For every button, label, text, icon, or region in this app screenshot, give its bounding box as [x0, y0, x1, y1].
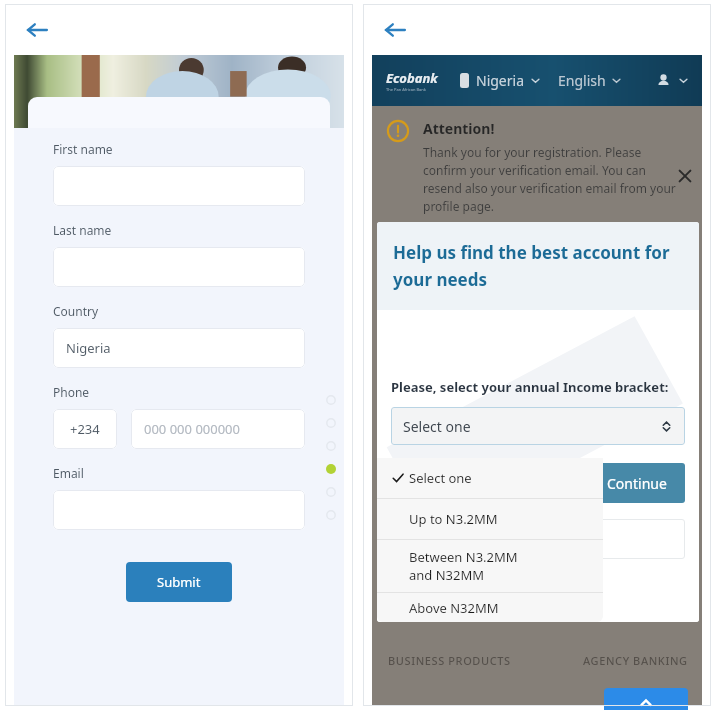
- staticText: Nigeria: [476, 71, 525, 90]
- staticText: 000 000 000000: [144, 420, 240, 438]
- button[interactable]: [53, 490, 305, 530]
- staticText: Help us find the best account for your n…: [393, 241, 683, 291]
- button[interactable]: Up to N3.2MM: [377, 499, 603, 539]
- staticText: Nigeria: [66, 339, 111, 357]
- staticText: Ecobank: [386, 69, 438, 87]
- button[interactable]: English: [558, 71, 621, 90]
- staticText: Thank you for your registration. Please …: [423, 144, 676, 215]
- staticText: The Pan African Bank: [386, 87, 426, 92]
- staticText: English: [558, 71, 606, 90]
- button[interactable]: +234: [53, 409, 117, 449]
- button[interactable]: Close: [676, 167, 694, 185]
- button[interactable]: [53, 247, 305, 287]
- button[interactable]: Back: [15, 8, 59, 52]
- staticText: BUSINESS PRODUCTS: [388, 653, 511, 668]
- staticText: +234: [70, 420, 100, 438]
- button[interactable]: Select one: [377, 458, 603, 498]
- staticText: Last name: [53, 222, 112, 238]
- staticText: Continue: [607, 474, 667, 493]
- button[interactable]: Continue: [589, 463, 685, 503]
- staticText: Select one: [409, 469, 472, 487]
- button[interactable]: Account: [656, 73, 688, 88]
- button[interactable]: Between N3.2MM and N32MM: [377, 540, 603, 592]
- staticText: Please, select your annual Income bracke…: [391, 378, 669, 396]
- staticText: AGENCY BANKING: [583, 653, 688, 668]
- button[interactable]: Above N32MM: [377, 593, 603, 622]
- staticText: Email: [53, 465, 84, 481]
- button[interactable]: Scroll to top: [604, 688, 688, 710]
- staticText: Phone: [53, 384, 90, 400]
- button[interactable]: Select one: [391, 407, 685, 445]
- staticText: Attention!: [423, 119, 495, 138]
- staticText: Between N3.2MM and N32MM: [409, 548, 518, 584]
- staticText: Above N32MM: [409, 599, 499, 617]
- button[interactable]: Back: [373, 8, 417, 52]
- button[interactable]: Nigeria: [53, 328, 305, 368]
- staticText: Up to N3.2MM: [409, 510, 498, 528]
- button[interactable]: [53, 166, 305, 206]
- staticText: Submit: [157, 573, 201, 591]
- staticText: Select one: [403, 417, 471, 436]
- button[interactable]: Nigeria: [476, 71, 540, 90]
- staticText: Country: [53, 303, 99, 319]
- button[interactable]: Submit: [126, 562, 232, 602]
- staticText: First name: [53, 141, 113, 157]
- button[interactable]: 000 000 000000: [131, 409, 305, 449]
